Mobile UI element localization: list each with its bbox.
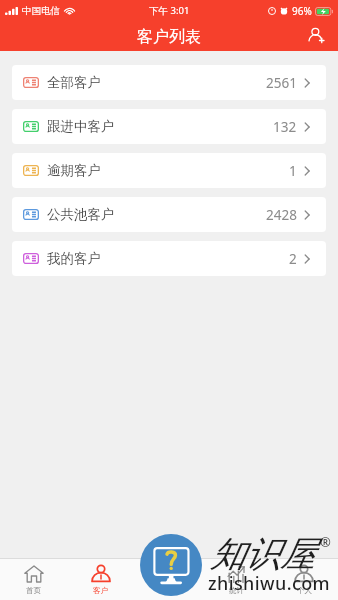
staticText: 客户 <box>93 586 108 595</box>
staticText: 2428 <box>266 206 297 224</box>
staticText: 96% <box>292 4 312 18</box>
staticText: 我的客户 <box>47 250 101 267</box>
button[interactable]: 首页 <box>0 558 67 600</box>
staticText: 中国电信 <box>22 5 60 17</box>
staticText: 首页 <box>26 586 41 595</box>
button[interactable]: 统计 <box>202 558 270 600</box>
staticText: 统计 <box>229 586 244 595</box>
staticText: 日程 <box>161 586 176 595</box>
staticText: ® <box>320 533 331 551</box>
button[interactable]: 公共池客户 <box>12 197 326 232</box>
staticText: 1 <box>289 162 297 180</box>
staticText: 知识屋 <box>210 532 315 576</box>
staticText: 公共池客户 <box>47 206 115 223</box>
button[interactable]: 添加客户 <box>299 21 333 51</box>
button[interactable]: 日程 <box>134 558 202 600</box>
button[interactable]: 全部客户 <box>12 65 326 100</box>
staticText: zhishiwu.com <box>208 571 331 596</box>
staticText: 下午 3:01 <box>149 4 190 17</box>
staticText: 逾期客户 <box>47 162 101 179</box>
button[interactable]: 个人 <box>270 558 338 600</box>
button[interactable]: 跟进中客户 <box>12 109 326 144</box>
button[interactable]: 我的客户 <box>12 241 326 276</box>
staticText: 个人 <box>297 586 312 595</box>
staticText: 跟进中客户 <box>47 118 115 135</box>
button[interactable]: 逾期客户 <box>12 153 326 188</box>
staticText: 2561 <box>266 74 297 92</box>
staticText: 2 <box>289 250 297 268</box>
staticText: 客户列表 <box>137 27 201 47</box>
staticText: 132 <box>273 118 297 136</box>
button[interactable]: 客户 <box>67 558 134 600</box>
staticText: 全部客户 <box>47 74 101 91</box>
